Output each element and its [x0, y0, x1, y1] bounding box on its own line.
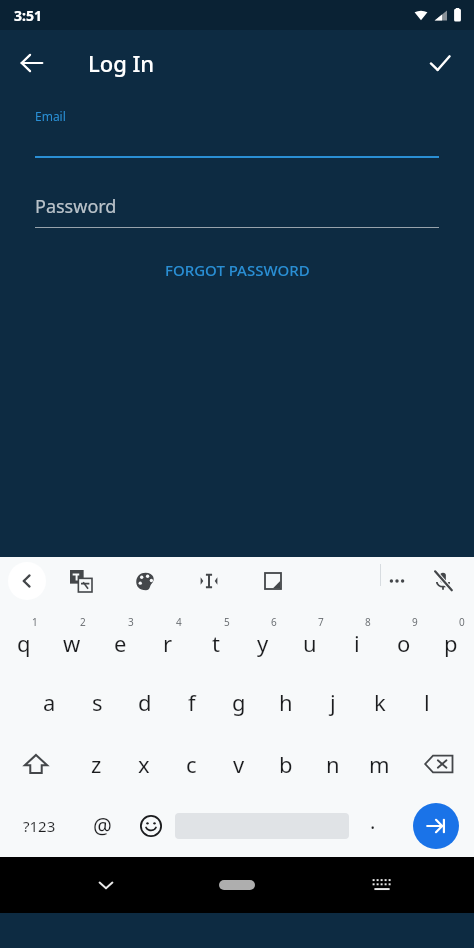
staticText: p: [444, 628, 458, 658]
staticText: m: [369, 749, 390, 779]
button[interactable]: 1: [0, 609, 48, 671]
staticText: r: [163, 628, 173, 658]
button[interactable]: b: [262, 733, 309, 795]
button[interactable]: 7: [286, 609, 333, 671]
button[interactable]: 6: [239, 609, 286, 671]
staticText: 5: [224, 615, 230, 629]
button[interactable]: g: [215, 671, 262, 733]
staticText: 8: [365, 615, 371, 629]
button[interactable]: Emoji: [127, 795, 175, 857]
button[interactable]: s: [73, 671, 121, 733]
button[interactable]: Confirm: [416, 39, 464, 87]
button[interactable]: 9: [380, 609, 427, 671]
button[interactable]: Backspace: [403, 733, 474, 795]
button[interactable]: Translate: [64, 564, 98, 598]
button[interactable]: x: [120, 733, 168, 795]
staticText: 7: [318, 615, 324, 629]
staticText: .: [370, 808, 376, 835]
button[interactable]: f: [168, 671, 215, 733]
staticText: e: [114, 628, 127, 658]
staticText: 3:51: [14, 6, 42, 25]
button[interactable]: 4: [144, 609, 192, 671]
button[interactable]: Shift: [0, 733, 72, 795]
staticText: d: [138, 687, 152, 717]
staticText: h: [279, 687, 293, 717]
button[interactable]: Back: [8, 39, 56, 87]
staticText: o: [397, 628, 411, 658]
button[interactable]: a: [25, 671, 73, 733]
staticText: y: [257, 628, 269, 658]
button[interactable]: FORGOT PASSWORD: [153, 254, 322, 286]
staticText: j: [330, 687, 336, 717]
button[interactable]: .: [349, 795, 397, 857]
button[interactable]: 2: [48, 609, 96, 671]
button[interactable]: h: [262, 671, 309, 733]
staticText: s: [92, 687, 103, 717]
staticText: u: [303, 628, 317, 658]
button[interactable]: n: [309, 733, 356, 795]
staticText: b: [279, 749, 293, 779]
staticText: f: [188, 687, 196, 717]
button[interactable]: Switch keyboard: [362, 865, 402, 905]
staticText: 4: [176, 615, 182, 629]
staticText: n: [326, 749, 340, 779]
button[interactable]: m: [356, 733, 403, 795]
button[interactable]: Space: [175, 795, 349, 857]
staticText: 2: [80, 615, 86, 629]
staticText: x: [138, 749, 150, 779]
staticText: l: [424, 687, 430, 717]
staticText: g: [232, 687, 246, 717]
button[interactable]: 0: [427, 609, 474, 671]
button[interactable]: 5: [192, 609, 239, 671]
staticText: @: [93, 812, 112, 841]
staticText: t: [212, 628, 220, 658]
staticText: v: [233, 749, 245, 779]
staticText: Password: [35, 194, 117, 219]
staticText: 0: [459, 615, 465, 629]
button[interactable]: Home: [219, 880, 255, 890]
staticText: ?123: [23, 816, 56, 836]
staticText: q: [17, 628, 31, 658]
button[interactable]: z: [72, 733, 120, 795]
button[interactable]: Voice input off: [426, 564, 460, 598]
button[interactable]: v: [215, 733, 262, 795]
button[interactable]: 3: [96, 609, 144, 671]
staticText: k: [374, 687, 386, 717]
staticText: i: [354, 628, 360, 658]
staticText: z: [91, 749, 102, 779]
button[interactable]: Clipboard: [256, 564, 290, 598]
staticText: 3: [128, 615, 134, 629]
staticText: c: [186, 749, 197, 779]
button[interactable]: Hide keyboard: [86, 865, 126, 905]
button[interactable]: Themes: [128, 564, 162, 598]
button[interactable]: d: [121, 671, 168, 733]
button[interactable]: Previous: [8, 562, 46, 600]
staticText: Email: [35, 108, 66, 124]
button[interactable]: l: [403, 671, 450, 733]
button[interactable]: 8: [333, 609, 380, 671]
staticText: 6: [271, 615, 277, 629]
staticText: FORGOT PASSWORD: [165, 260, 310, 280]
staticText: w: [63, 628, 81, 658]
staticText: Log In: [88, 48, 155, 78]
button[interactable]: ?123: [0, 795, 78, 857]
staticText: 9: [412, 615, 418, 629]
button[interactable]: k: [356, 671, 403, 733]
button[interactable]: More options: [380, 564, 414, 598]
button[interactable]: Enter: [397, 795, 474, 857]
button[interactable]: Text editing: [192, 564, 226, 598]
button[interactable]: j: [309, 671, 356, 733]
button[interactable]: @: [78, 795, 127, 857]
button[interactable]: c: [168, 733, 215, 795]
staticText: a: [43, 687, 56, 717]
staticText: 1: [32, 615, 38, 629]
